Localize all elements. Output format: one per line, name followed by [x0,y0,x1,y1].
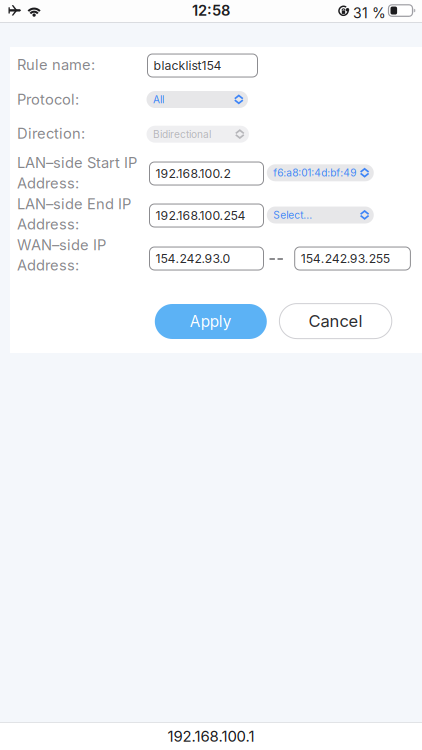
button[interactable]: 192.168.100.254 [149,204,263,227]
staticText: f6:a8:01:4d:bf:49 [273,167,356,179]
staticText: LAN–side End IP [17,195,131,213]
button[interactable]: All [146,91,248,108]
staticText: Address: [17,174,79,192]
staticText: WAN–side IP [17,236,106,254]
staticText: Select... [273,209,312,221]
staticText: 154.242.93.0 [155,251,230,266]
staticText: 192.168.100.1 [167,727,254,745]
staticText: All [153,93,164,106]
button[interactable]: 154.242.93.0 [149,247,263,270]
button[interactable]: 192.168.100.2 [149,162,263,185]
staticText: 192.168.100.2 [155,166,230,181]
staticText: Bidirectional [153,128,211,140]
button[interactable]: Bidirectional [146,126,249,143]
staticText: 192.168.100.254 [155,208,245,223]
button[interactable]: Select... [267,206,374,223]
staticText: 12:58 [192,2,230,19]
staticText: Cancel [309,311,363,331]
button[interactable]: blacklist154 [147,54,257,77]
staticText: Rule name: [17,56,95,73]
staticText: Direction: [17,125,85,142]
staticText: Address: [17,215,79,233]
staticText: 154.242.93.255 [301,251,390,266]
staticText: LAN–side Start IP [17,154,137,171]
staticText: Apply [190,312,232,331]
staticText: Address: [17,256,79,274]
staticText: blacklist154 [153,58,221,73]
staticText: Protocol: [17,90,79,108]
button[interactable]: f6:a8:01:4d:bf:49 [267,164,374,181]
button[interactable]: Apply [155,304,267,339]
button[interactable]: Cancel [279,304,392,339]
button[interactable]: 154.242.93.255 [295,247,410,270]
staticText: 31 % [353,5,386,22]
